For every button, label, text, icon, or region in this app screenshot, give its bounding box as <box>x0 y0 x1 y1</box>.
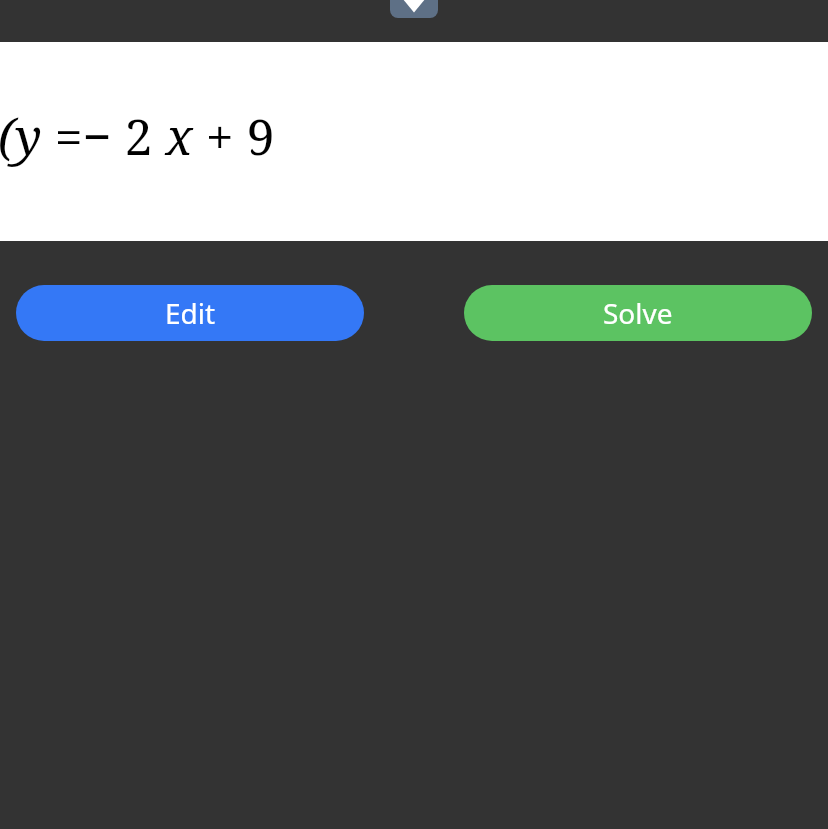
staticText: Solve <box>603 294 673 332</box>
button[interactable]: Collapse <box>390 0 438 18</box>
staticText: Edit <box>165 294 216 332</box>
staticText: (y =− 2 x + 9 <box>0 102 275 170</box>
button[interactable]: Solve <box>464 285 812 341</box>
button[interactable]: Edit <box>16 285 364 341</box>
